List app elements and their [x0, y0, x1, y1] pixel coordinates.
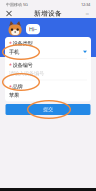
staticText: 设备类型 [13, 40, 33, 47]
button[interactable]: * [5, 80, 91, 101]
staticText: 手机 [9, 49, 19, 55]
button[interactable]: 提交 [5, 104, 90, 115]
button[interactable]: * [5, 37, 91, 58]
staticText: 设备编号 [13, 62, 33, 68]
staticText: * [9, 83, 12, 90]
staticText: 12:34 [81, 2, 90, 7]
staticText: 苹果 [9, 92, 19, 98]
staticText: Hi~ [29, 26, 37, 33]
staticText: * [9, 62, 12, 69]
staticText: 提交 [43, 106, 53, 113]
staticText: * [9, 40, 12, 47]
button[interactable]: More [81, 7, 93, 19]
button[interactable]: Close [3, 7, 15, 19]
staticText: 新增设备 [34, 9, 62, 18]
staticText: ··· [85, 10, 88, 17]
staticText: 请输入设备编号 [9, 70, 44, 77]
staticText: 中国移动 5G [6, 2, 28, 7]
staticText: 品牌 [13, 83, 23, 90]
button[interactable]: * [5, 59, 91, 80]
